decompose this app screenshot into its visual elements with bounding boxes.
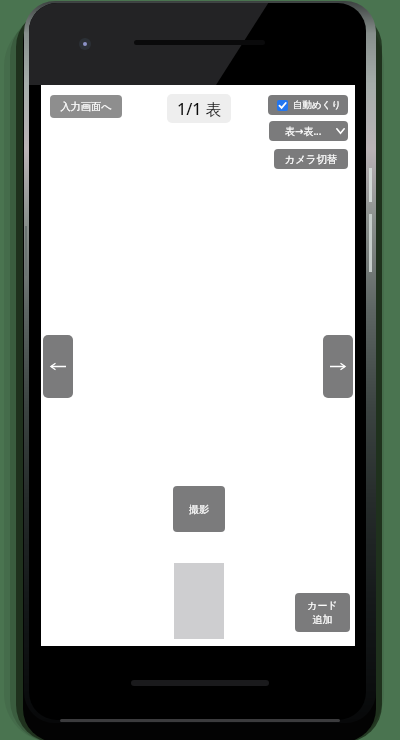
button[interactable]: Previous page [43,335,73,398]
staticText: 表→表... [285,124,322,138]
button[interactable]: 自動めくり [268,95,348,115]
button[interactable]: 撮影 [173,486,225,532]
button[interactable]: 1/1 表 [167,94,231,123]
staticText: 撮影 [189,503,209,516]
button[interactable]: 入力画面へ [50,95,122,118]
staticText: カメラ切替 [284,153,338,166]
button[interactable]: Next page [323,335,353,398]
button[interactable]: カード 追加 [295,593,350,632]
button[interactable]: 表→表... [269,121,348,141]
staticText: 1/1 表 [177,98,222,120]
staticText: カード 追加 [307,599,338,626]
staticText: 入力画面へ [60,100,112,113]
staticText: 自動めくり [293,99,342,111]
button[interactable]: カメラ切替 [274,149,348,169]
